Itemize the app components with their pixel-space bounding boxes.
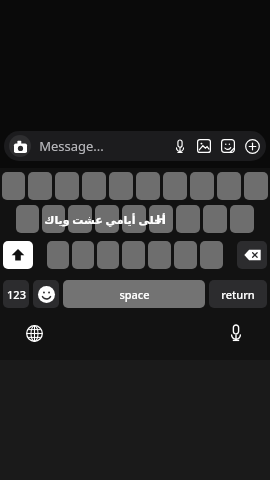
button[interactable] [16,205,39,233]
button[interactable]: Dictation [222,319,250,347]
button[interactable] [200,241,223,269]
button[interactable] [68,205,92,233]
button[interactable]: H [149,205,173,233]
button[interactable]: Emoji [33,280,59,308]
button[interactable] [72,241,94,269]
button[interactable] [47,241,69,269]
button[interactable]: space [63,280,205,308]
button[interactable] [136,172,160,200]
staticText: H [156,210,166,228]
button[interactable] [97,241,119,269]
button[interactable]: More options [240,133,264,159]
button[interactable] [148,241,171,269]
button[interactable] [28,172,52,200]
button[interactable] [122,205,146,233]
button[interactable]: Next keyboard [20,319,48,347]
staticText: return [221,287,255,302]
staticText: أحلى أيامي عشت وياك [44,212,166,227]
button[interactable] [42,205,65,233]
button[interactable] [95,205,119,233]
staticText: Message... [39,137,104,155]
button[interactable]: Audio message [168,134,192,158]
button[interactable]: 123 [3,280,29,308]
button[interactable] [203,205,227,233]
button[interactable] [176,205,200,233]
button[interactable]: Backspace [237,241,267,269]
button[interactable]: return [209,280,267,308]
button[interactable]: Photos [192,134,216,158]
button[interactable]: Shift [3,241,33,269]
staticText: space [119,287,150,302]
button[interactable] [217,172,241,200]
staticText: 123 [7,287,26,302]
button[interactable] [174,241,197,269]
button[interactable] [230,205,254,233]
button[interactable] [109,172,133,200]
button[interactable]: Stickers [216,134,240,158]
button[interactable] [2,172,25,200]
button[interactable] [122,241,145,269]
button[interactable] [244,172,268,200]
button[interactable] [190,172,214,200]
button[interactable]: Camera [9,135,31,157]
button[interactable] [163,172,187,200]
button[interactable] [82,172,106,200]
button[interactable] [55,172,79,200]
